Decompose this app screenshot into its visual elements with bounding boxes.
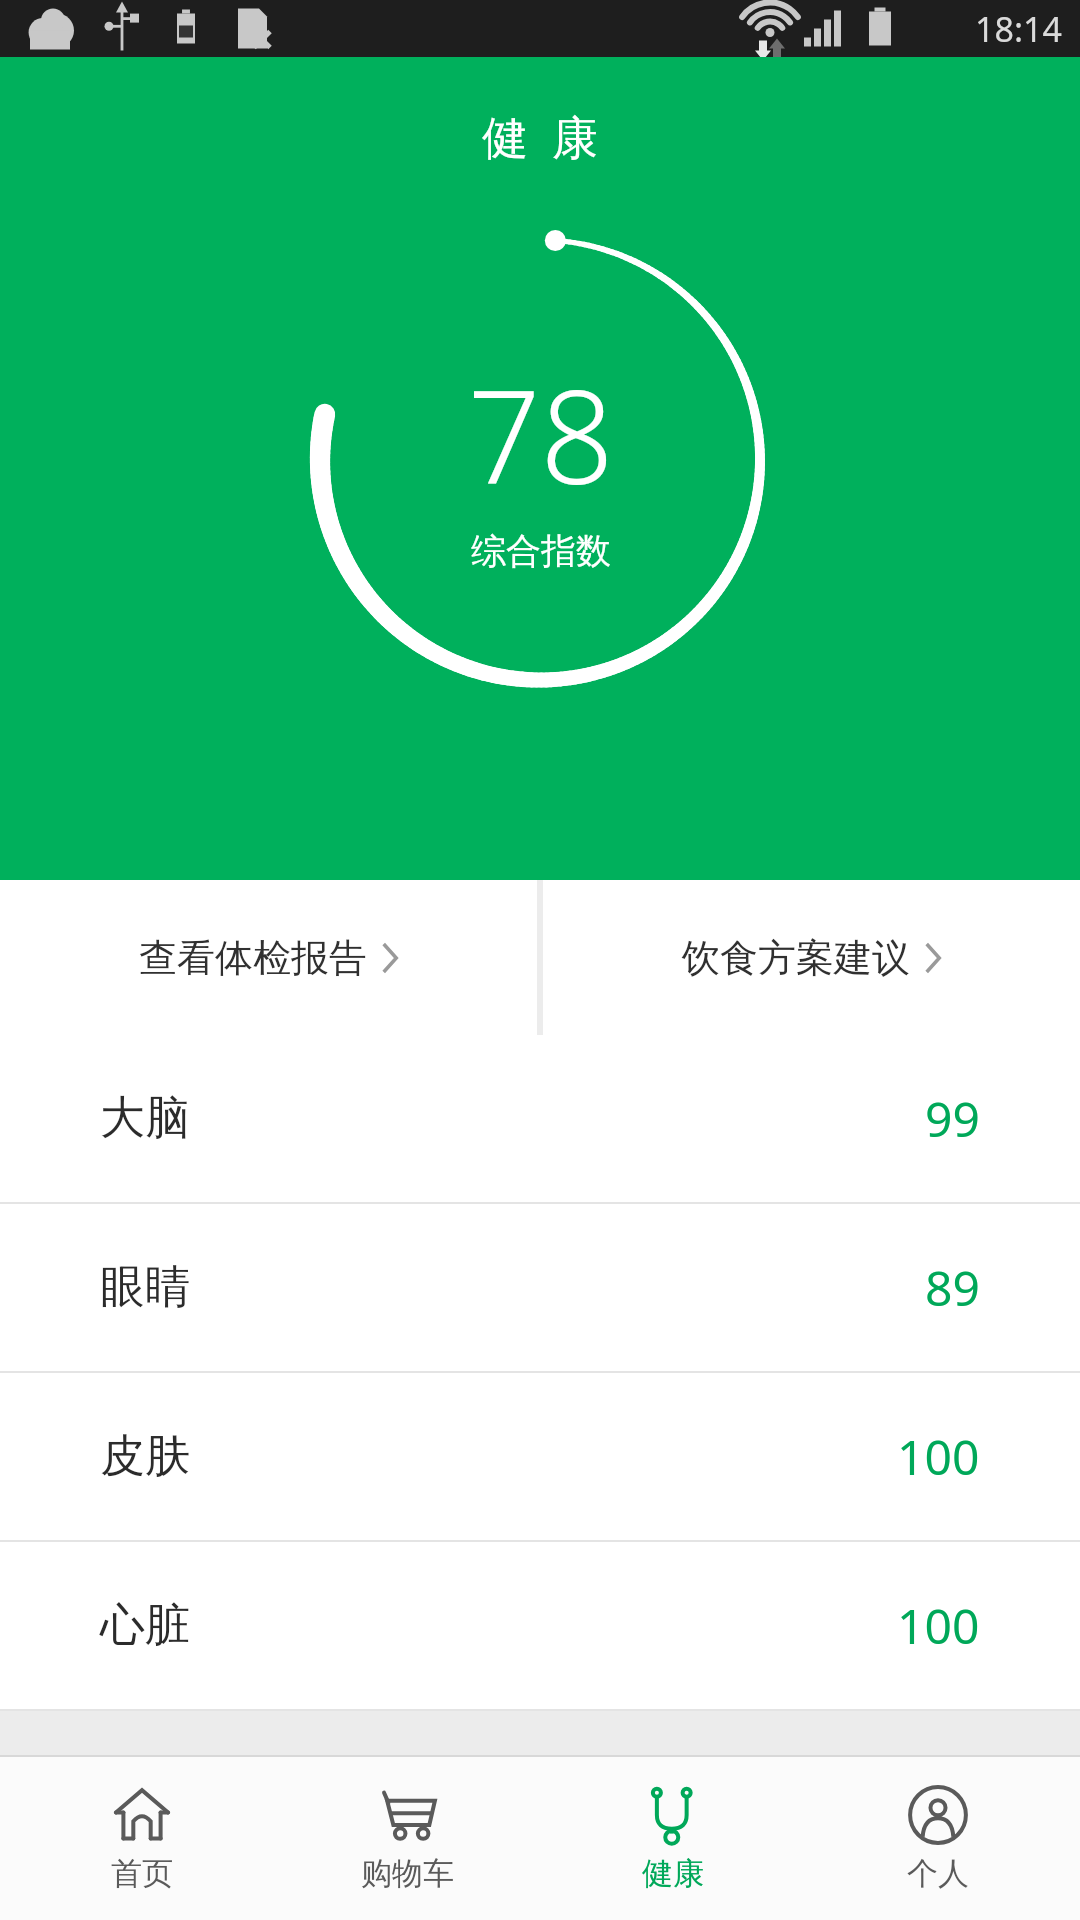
staticText: 皮肤 [100,1428,190,1485]
staticText: 99 [925,1086,980,1151]
button[interactable]: Home [18,1784,266,1893]
staticText: 健康 [642,1854,704,1893]
staticText: 大脑 [100,1090,190,1147]
button[interactable]: 皮肤 [0,1373,1080,1540]
button[interactable]: Shopping cart [283,1784,531,1893]
staticText: 100 [897,1593,980,1658]
button[interactable]: 查看体检报告 [0,880,537,1035]
button[interactable]: Health [549,1784,797,1893]
button[interactable]: 眼睛 [0,1204,1080,1371]
staticText: 饮食方案建议 [682,934,910,982]
staticText: 购物车 [361,1854,454,1893]
staticText: 89 [925,1255,980,1320]
staticText: 首页 [111,1854,173,1893]
staticText: 78 [467,347,614,521]
staticText: 100 [897,1424,980,1489]
button[interactable]: 饮食方案建议 [543,880,1080,1035]
staticText: 个人 [907,1854,969,1893]
staticText: 综合指数 [471,529,611,573]
staticText: 18:14 [975,6,1062,52]
staticText: 心脏 [100,1597,190,1654]
staticText: 查看体检报告 [139,934,367,982]
staticText: 眼睛 [100,1259,190,1316]
button[interactable]: Profile [814,1784,1062,1893]
staticText: 健 康 [482,105,598,168]
button[interactable]: 大脑 [0,1035,1080,1202]
button[interactable]: 心脏 [0,1542,1080,1709]
